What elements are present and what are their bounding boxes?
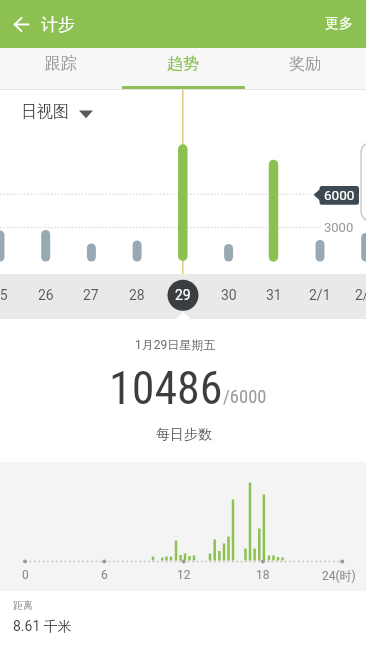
staticText: 计步 (41, 14, 75, 35)
button[interactable]: 25 (0, 0, 44, 32)
staticText: 3000 (324, 220, 354, 235)
staticText: 2/2 (355, 287, 366, 303)
staticText: 日视图 (21, 102, 69, 122)
button[interactable] (244, 48, 366, 90)
button[interactable]: 26 (0, 0, 44, 32)
button[interactable]: 28 (0, 0, 44, 32)
staticText: 25 (0, 287, 8, 303)
staticText: 31 (266, 287, 282, 303)
staticText: 30 (221, 287, 237, 303)
staticText: 距离 (13, 599, 33, 612)
staticText: 0 (22, 568, 29, 582)
button[interactable] (6, 9, 36, 39)
button[interactable]: 2/1 (0, 0, 44, 32)
staticText: 跟踪 (45, 54, 77, 74)
button[interactable]: 27 (0, 0, 44, 32)
button[interactable]: 更多 (0, 0, 54, 34)
staticText: 26 (38, 287, 54, 303)
staticText: 1月29日星期五 (135, 337, 216, 352)
staticText: 趋势 (167, 54, 199, 74)
staticText: 每日步数 (156, 426, 212, 444)
staticText: 24(时) (322, 568, 356, 583)
staticText: 27 (83, 287, 99, 303)
button[interactable]: 30 (0, 0, 44, 32)
staticText: 6 (101, 568, 108, 582)
button[interactable]: 29 (0, 0, 36, 32)
staticText: 6000 (324, 187, 355, 203)
button[interactable] (0, 48, 122, 90)
button[interactable]: 2/2 (0, 0, 44, 32)
staticText: 10486 (109, 361, 223, 415)
staticText: 28 (129, 287, 145, 303)
staticText: 29 (175, 287, 191, 303)
button[interactable]: 31 (0, 0, 44, 32)
button[interactable] (12, 98, 102, 126)
staticText: 8.61 千米 (13, 618, 72, 636)
staticText: 12 (177, 568, 191, 582)
button[interactable] (122, 48, 244, 90)
staticText: 奖励 (289, 54, 321, 74)
staticText: 更多 (325, 15, 353, 33)
staticText: 18 (256, 568, 270, 582)
staticText: /6000 (223, 386, 267, 408)
staticText: 2/1 (309, 287, 331, 303)
